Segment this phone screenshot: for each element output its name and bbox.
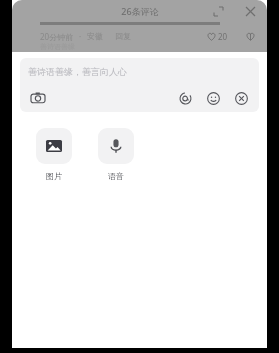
staticText: 善诗语善缘，善言向人心 [28,66,127,77]
button[interactable]: 回复 [115,31,131,41]
staticText: 语音 [108,171,124,181]
button[interactable]: Voice [98,128,134,181]
staticText: 26条评论 [121,5,159,17]
button[interactable]: Mention [175,88,195,108]
button[interactable]: Photo [36,128,72,181]
staticText: 20分钟前 [40,31,74,42]
staticText: 图片 [46,171,62,181]
button[interactable]: Close [241,2,259,20]
button[interactable]: Emoji [203,88,223,108]
button[interactable]: Dislike [243,29,257,43]
staticText: 安徽 [87,31,103,41]
button[interactable]: Expand [209,2,227,20]
button[interactable]: Clear [231,88,251,108]
button[interactable]: Camera [28,88,48,108]
button[interactable]: 善诗语善缘，善言向人心 [20,58,259,84]
staticText: 20 [218,31,228,42]
button[interactable]: 20 [206,31,229,42]
